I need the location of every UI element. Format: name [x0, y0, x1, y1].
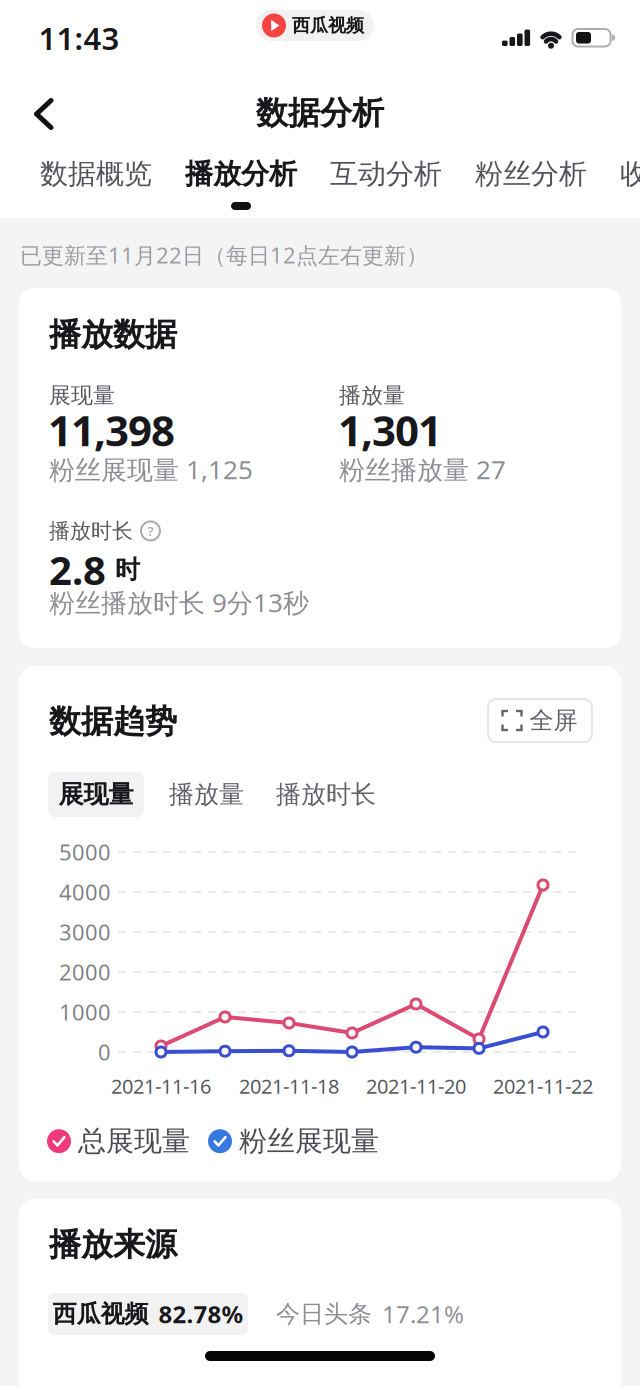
staticText: 展现量 [58, 779, 133, 810]
button[interactable]: 收益分析 [620, 157, 640, 191]
staticText: 收益分析 [620, 157, 640, 191]
button[interactable]: 总展现量 [47, 1124, 190, 1158]
staticText: 11,398 [48, 402, 175, 458]
staticText: 5000 [59, 837, 111, 867]
button[interactable]: 返回 [23, 88, 64, 140]
staticText: 数据趋势 [49, 702, 177, 741]
staticText: 播放数据 [49, 315, 177, 354]
button[interactable]: 展现量 [48, 772, 144, 817]
staticText: 播放量 [169, 779, 244, 810]
button[interactable]: 数据概览 [40, 157, 152, 191]
staticText: 时 [115, 554, 140, 585]
button[interactable]: 西瓜视频 [48, 1293, 248, 1335]
staticText: 2.8 [49, 543, 106, 596]
staticText: 今日头条 [276, 1299, 372, 1329]
staticText: 数据分析 [256, 93, 384, 133]
staticText: 已更新至11月22日（每日12点左右更新） [20, 240, 428, 270]
staticText: 西瓜视频 [52, 1299, 148, 1329]
staticText: 粉丝播放时长 9分13秒 [49, 585, 309, 619]
staticText: 播放量 [339, 382, 405, 409]
staticText: 粉丝展现量 1,125 [49, 452, 253, 486]
staticText: 2021-11-18 [239, 1073, 339, 1099]
staticText: 2000 [59, 957, 111, 987]
staticText: 1,301 [338, 402, 442, 458]
button[interactable]: 返回西瓜视频 [256, 10, 374, 41]
staticText: 3000 [59, 917, 111, 947]
staticText: 2021-11-22 [493, 1073, 593, 1099]
staticText: 总展现量 [78, 1124, 190, 1158]
staticText: 播放分析 [185, 157, 297, 191]
staticText: 4000 [59, 877, 111, 907]
button[interactable]: 互动分析 [330, 157, 442, 191]
staticText: 1000 [59, 997, 111, 1027]
staticText: 2021-11-16 [111, 1073, 211, 1099]
button[interactable]: 全屏 [488, 699, 592, 742]
button[interactable]: 今日头条 [276, 1293, 464, 1335]
staticText: 西瓜视频 [292, 14, 364, 36]
staticText: 粉丝播放量 27 [339, 452, 506, 486]
staticText: 17.21% [382, 1298, 464, 1330]
staticText: 展现量 [49, 382, 115, 409]
button[interactable]: 播放分析 [185, 157, 297, 191]
staticText: 播放来源 [49, 1225, 177, 1264]
button[interactable]: 播放时长 [276, 772, 376, 817]
staticText: 互动分析 [330, 157, 442, 191]
staticText: ? [147, 522, 153, 540]
staticText: 播放时长 [49, 518, 133, 544]
staticText: 82.78% [158, 1298, 243, 1330]
staticText: 粉丝展现量 [239, 1124, 379, 1158]
staticText: 数据概览 [40, 157, 152, 191]
staticText: 2021-11-20 [366, 1073, 466, 1099]
staticText: 11:43 [38, 17, 119, 59]
staticText: 全屏 [529, 706, 577, 735]
button[interactable]: 播放时长说明 [141, 521, 160, 540]
staticText: 播放时长 [276, 779, 376, 810]
button[interactable]: 粉丝分析 [475, 157, 587, 191]
staticText: 粉丝分析 [475, 157, 587, 191]
button[interactable]: 粉丝展现量 [208, 1124, 379, 1158]
staticText: 0 [98, 1037, 111, 1067]
button[interactable]: 播放量 [169, 772, 244, 817]
